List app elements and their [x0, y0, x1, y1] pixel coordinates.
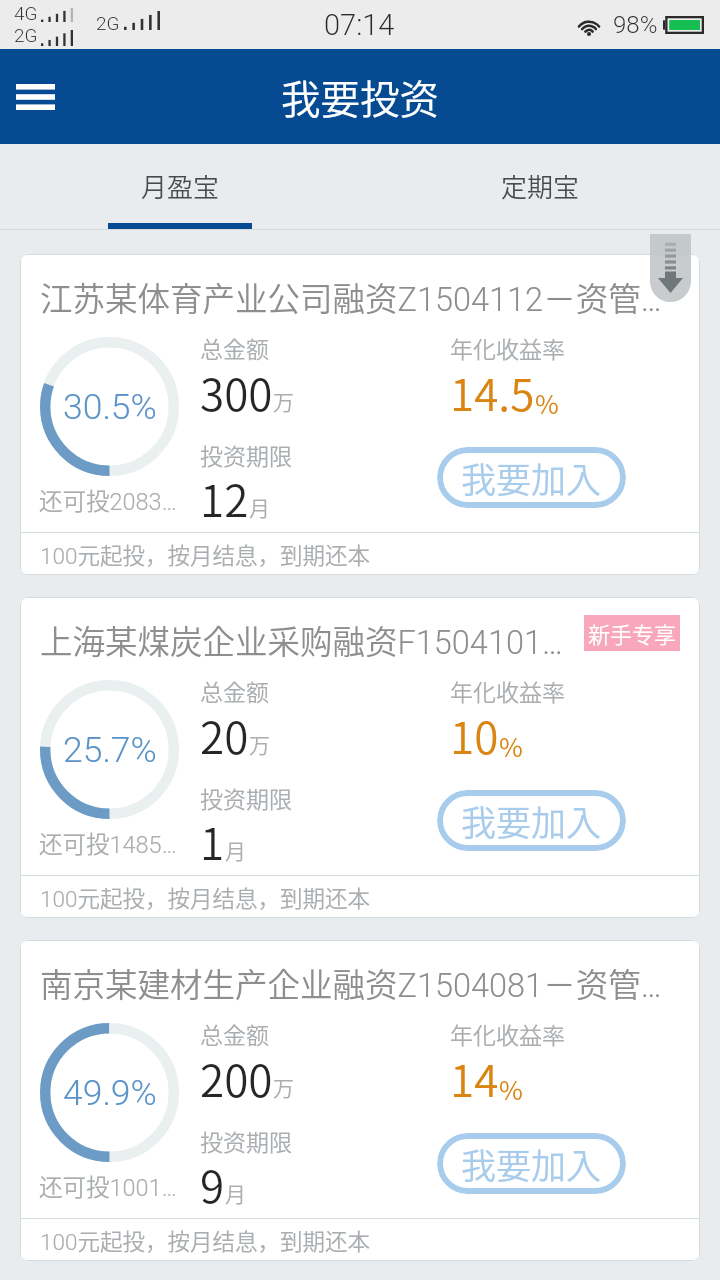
button[interactable]: 我要加入	[437, 1133, 626, 1194]
staticText: 49.9%	[63, 1072, 157, 1114]
staticText: 总金额	[200, 674, 269, 707]
staticText: 100元起投，按月结息，到期还本	[40, 1224, 370, 1257]
staticText: 12	[200, 466, 249, 530]
staticText: 07:14	[324, 8, 395, 42]
staticText: 100元起投，按月结息，到期还本	[40, 881, 370, 914]
staticText: 9	[200, 1152, 225, 1216]
staticText: 还可投1001…	[39, 1169, 177, 1203]
staticText: 30.5%	[63, 386, 157, 428]
staticText: 万	[273, 386, 294, 416]
button[interactable]: 我要加入	[437, 790, 626, 851]
staticText: 投资期限	[200, 781, 292, 814]
staticText: 月盈宝	[141, 167, 220, 205]
staticText: 万	[249, 729, 270, 759]
staticText: %	[499, 1070, 523, 1108]
staticText: 南京某建材生产企业融资Z1504081－资管…	[40, 959, 686, 1006]
button[interactable]: 我要加入	[437, 447, 626, 508]
staticText: 100元起投，按月结息，到期还本	[40, 538, 370, 571]
button[interactable]: 上海某煤炭企业采购融资F1504101…	[20, 597, 700, 918]
staticText: %	[499, 727, 523, 765]
staticText: 年化收益率	[450, 1017, 565, 1050]
button[interactable]: Menu	[3, 65, 67, 129]
button[interactable]: 月盈宝	[0, 144, 360, 229]
staticText: 300	[200, 360, 273, 424]
staticText: 2G	[96, 12, 120, 34]
staticText: 98%	[613, 11, 658, 39]
staticText: 月	[225, 835, 246, 865]
staticText: 总金额	[200, 1017, 269, 1050]
staticText: 上海某煤炭企业采购融资F1504101…	[40, 616, 585, 663]
staticText: 10	[450, 703, 499, 767]
staticText: 1	[200, 809, 225, 873]
staticText: 投资期限	[200, 438, 292, 471]
staticText: 总金额	[200, 331, 269, 364]
staticText: 新手专享	[588, 617, 677, 649]
staticText: 定期宝	[501, 167, 580, 205]
staticText: %	[535, 384, 559, 422]
staticText: 月	[249, 492, 270, 522]
staticText: 200	[200, 1046, 273, 1110]
staticText: 20	[200, 703, 249, 767]
staticText: 4G	[14, 2, 38, 24]
staticText: 我要加入	[461, 1138, 602, 1189]
staticText: 我要投资	[281, 68, 439, 125]
staticText: 我要加入	[461, 795, 602, 846]
button[interactable]: 南京某建材生产企业融资Z1504081－资管…	[20, 940, 700, 1261]
staticText: 万	[273, 1072, 294, 1102]
staticText: 年化收益率	[450, 674, 565, 707]
staticText: 14.5	[450, 360, 535, 424]
button[interactable]: 定期宝	[360, 144, 720, 229]
staticText: 14	[450, 1046, 499, 1110]
staticText: 2G	[14, 24, 38, 46]
staticText: 江苏某体育产业公司融资Z1504112－资管…	[40, 273, 686, 320]
button[interactable]: 江苏某体育产业公司融资Z1504112－资管…	[20, 254, 700, 575]
staticText: 25.7%	[63, 729, 157, 771]
staticText: 投资期限	[200, 1124, 292, 1157]
staticText: 还可投1485…	[39, 826, 177, 860]
staticText: 我要加入	[461, 452, 602, 503]
other: Scroll down	[650, 234, 691, 302]
staticText: 还可投2083…	[39, 483, 177, 517]
staticText: 月	[225, 1178, 246, 1208]
staticText: 年化收益率	[450, 331, 565, 364]
